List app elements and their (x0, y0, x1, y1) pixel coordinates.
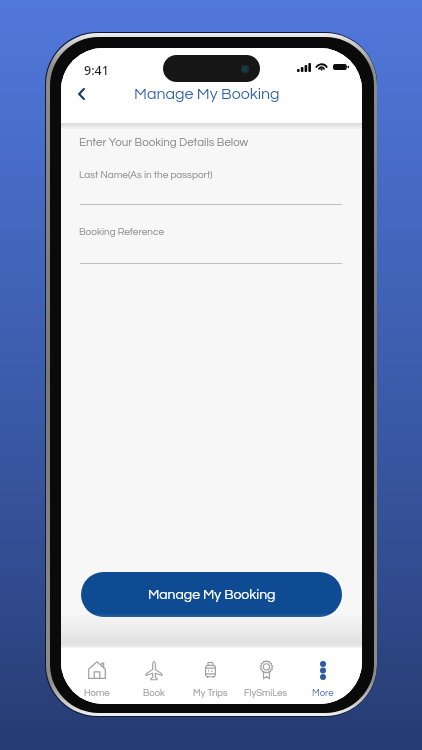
staticText: Last Name(As in the passport) (79, 170, 213, 180)
staticText: Manage My Booking (148, 588, 276, 602)
button[interactable]: FlySmiLes (239, 653, 293, 701)
button[interactable]: More (296, 653, 350, 701)
button[interactable]: Manage My Booking (81, 572, 342, 617)
button[interactable]: Home (70, 653, 124, 701)
staticText: FlySmiLes (244, 688, 288, 698)
button[interactable]: My Trips (183, 653, 237, 701)
staticText: 9:41 (84, 62, 109, 79)
staticText: My Trips (193, 688, 228, 698)
button[interactable]: Back (63, 77, 99, 111)
staticText: Enter Your Booking Details Below (79, 137, 249, 149)
button[interactable]: Book (127, 653, 181, 701)
staticText: Book (143, 688, 165, 698)
staticText: Booking Reference (79, 227, 164, 237)
staticText: More (312, 688, 334, 698)
staticText: Home (84, 688, 110, 698)
staticText: Manage My Booking (134, 86, 280, 102)
